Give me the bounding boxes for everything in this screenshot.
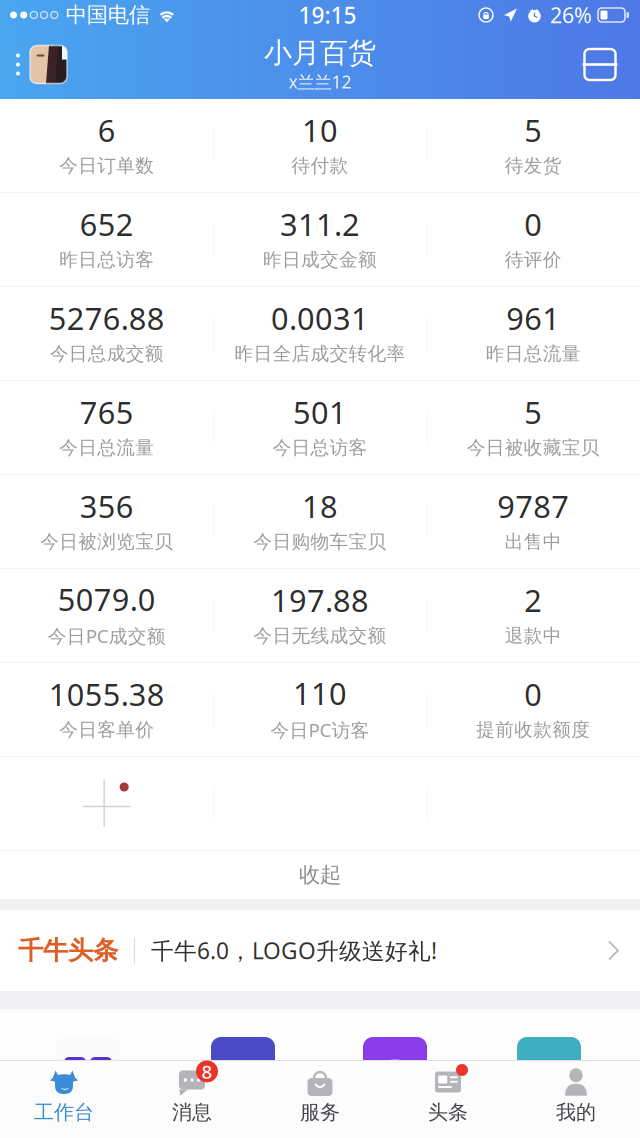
staticText: 765	[80, 392, 134, 432]
staticText: 356	[80, 486, 134, 526]
staticText: 待付款	[291, 154, 348, 177]
staticText: x兰兰12	[288, 70, 351, 93]
button[interactable]: 服务	[256, 1061, 384, 1138]
staticText: 5079.0	[58, 579, 156, 619]
button[interactable]: Add metric	[0, 757, 213, 850]
button[interactable]: 工作台	[0, 1061, 128, 1138]
staticText: 千牛6.0，LOGO升级送好礼!	[151, 935, 437, 965]
staticText: 今日被浏览宝贝	[40, 530, 173, 553]
button[interactable]: Switch workspace layout	[576, 40, 624, 88]
staticText: 10	[302, 110, 338, 150]
staticText: 2	[524, 580, 542, 620]
button[interactable]: 18	[213, 475, 427, 568]
button[interactable]: 5	[427, 99, 640, 192]
staticText: 5	[524, 110, 542, 150]
staticText: 工作台	[34, 1100, 94, 1125]
staticText: 出售中	[505, 530, 562, 553]
staticText: 9787	[497, 486, 569, 526]
staticText: 昨日总流量	[486, 342, 581, 365]
staticText: 0	[524, 204, 542, 244]
staticText: 652	[80, 204, 134, 244]
button[interactable]: 0	[427, 663, 640, 756]
staticText: 8	[201, 1059, 212, 1084]
staticText: 收起	[299, 862, 341, 888]
staticText: 待评价	[505, 248, 562, 271]
button[interactable]: 356	[0, 475, 213, 568]
button[interactable]: 0	[427, 193, 640, 286]
staticText: 今日PC访客	[270, 717, 369, 742]
button[interactable]: 2	[427, 569, 640, 662]
button[interactable]: 0.0031	[213, 287, 427, 380]
staticText: 今日总成交额	[50, 342, 164, 365]
staticText: 26%	[550, 1, 592, 29]
staticText: 千牛头条	[18, 935, 118, 966]
button[interactable]: 1055.38	[0, 663, 213, 756]
staticText: 中国电信	[66, 2, 150, 28]
staticText: 1055.38	[49, 674, 165, 714]
staticText: 501	[293, 392, 347, 432]
staticText: 头条	[428, 1100, 468, 1125]
staticText: 今日客单价	[59, 718, 154, 741]
button[interactable]: More options	[6, 40, 30, 88]
staticText: 5276.88	[49, 298, 165, 338]
button[interactable]: 765	[0, 381, 213, 474]
button[interactable]: 6	[0, 99, 213, 192]
staticText: 0	[524, 674, 542, 714]
staticText: 今日购物车宝贝	[253, 530, 386, 553]
staticText: 提前收款额度	[476, 718, 590, 741]
button[interactable]: 我的	[512, 1061, 640, 1138]
button[interactable]: 5079.0	[0, 569, 213, 662]
staticText: 19:15	[298, 0, 356, 30]
staticText: 待发货	[505, 154, 562, 177]
button[interactable]: 收起	[0, 851, 640, 899]
staticText: 今日总流量	[59, 436, 154, 459]
staticText: 6	[98, 110, 116, 150]
staticText: 消息	[172, 1100, 212, 1125]
staticText: 961	[506, 298, 560, 338]
staticText: 0.0031	[271, 298, 369, 338]
button[interactable]: 头条	[384, 1061, 512, 1138]
staticText: 小月百货	[264, 36, 376, 70]
staticText: 311.2	[280, 204, 360, 244]
staticText: 我的	[556, 1100, 596, 1125]
staticText: 18	[302, 486, 338, 526]
staticText: 今日订单数	[59, 154, 154, 177]
button[interactable]: 5276.88	[0, 287, 213, 380]
staticText: 服务	[300, 1100, 340, 1125]
button[interactable]: 961	[427, 287, 640, 380]
button[interactable]: 311.2	[213, 193, 427, 286]
staticText: 昨日成交金额	[263, 248, 377, 271]
staticText: 昨日全店成交转化率	[234, 342, 405, 365]
button[interactable]: 501	[213, 381, 427, 474]
staticText: 今日无线成交额	[253, 624, 386, 647]
button[interactable]: 10	[213, 99, 427, 192]
button[interactable]: 9787	[427, 475, 640, 568]
staticText: 110	[293, 673, 347, 713]
button[interactable]: 8	[128, 1061, 256, 1138]
staticText: 5	[524, 392, 542, 432]
staticText: 昨日总访客	[59, 248, 154, 271]
staticText: 197.88	[271, 580, 369, 620]
button[interactable]: 197.88	[213, 569, 427, 662]
button[interactable]: 652	[0, 193, 213, 286]
staticText: 退款中	[505, 624, 562, 647]
button[interactable]: 千牛头条	[0, 910, 640, 991]
staticText: 今日总访客	[272, 436, 367, 459]
button[interactable]: 110	[213, 663, 427, 756]
staticText: 今日PC成交额	[48, 623, 166, 648]
staticText: 今日被收藏宝贝	[467, 436, 600, 459]
button[interactable]: 5	[427, 381, 640, 474]
button[interactable]: Shop avatar	[30, 45, 67, 83]
